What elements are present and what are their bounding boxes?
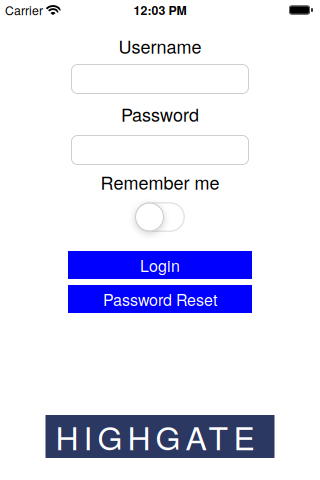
staticText: Password Reset [103,287,217,310]
button[interactable]: Remember me [135,202,185,232]
textField[interactable] [79,139,249,160]
staticText: Login [140,253,180,276]
staticText: HIGHGATE [55,414,254,459]
button[interactable]: Login [68,251,252,279]
button[interactable]: Password Reset [68,285,252,313]
staticText: Username [118,33,201,59]
staticText: Password [121,101,199,127]
staticText: Remember me [100,169,219,195]
textField[interactable] [79,68,249,89]
staticText: 12:03 PM [133,1,186,19]
staticText: Carrier [5,1,43,19]
